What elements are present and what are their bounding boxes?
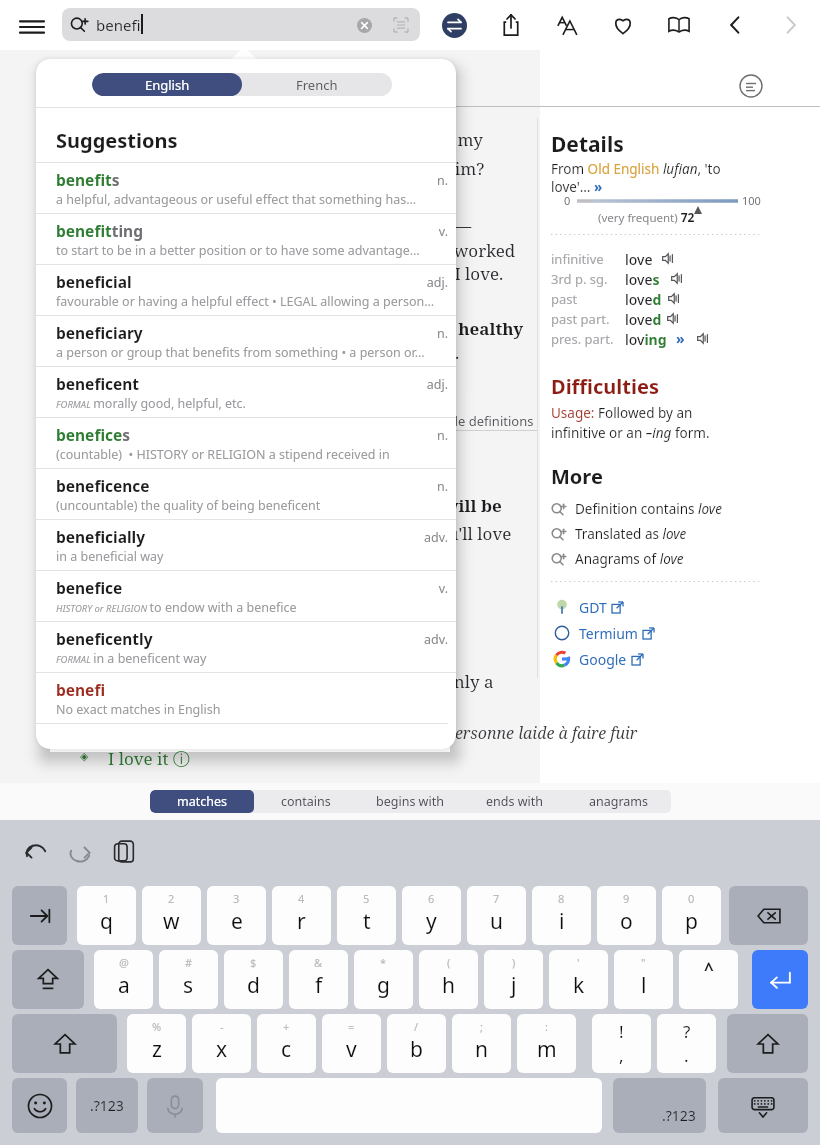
staticText: t bbox=[363, 907, 371, 936]
button[interactable]: Anagrams of love bbox=[551, 548, 766, 570]
button[interactable]: benefice bbox=[36, 571, 456, 621]
button[interactable]: Pronounce bbox=[662, 252, 675, 265]
button[interactable]: ^ bbox=[679, 950, 738, 1009]
button[interactable]: 2 bbox=[142, 886, 201, 945]
staticText: Usage: Followed by an infinitive or an –… bbox=[551, 404, 731, 442]
button[interactable]: ' bbox=[549, 950, 608, 1009]
button[interactable]: Translated as love bbox=[551, 523, 766, 545]
button[interactable]: ( bbox=[419, 950, 478, 1009]
staticText: ◈ bbox=[80, 750, 89, 763]
button[interactable]: Pronounce bbox=[667, 312, 680, 325]
button[interactable]: .?123 bbox=[76, 1078, 138, 1133]
button[interactable]: Paste bbox=[112, 838, 138, 864]
button[interactable]: * bbox=[354, 950, 413, 1009]
staticText: i bbox=[559, 907, 565, 936]
button[interactable]: ! bbox=[592, 1014, 651, 1073]
button[interactable]: Redo bbox=[66, 838, 94, 866]
button[interactable]: benefi bbox=[62, 8, 420, 41]
button[interactable]: Pronounce bbox=[671, 272, 684, 285]
button[interactable]: begins with bbox=[358, 790, 462, 813]
button[interactable]: contains bbox=[254, 790, 358, 813]
button[interactable]: matches bbox=[150, 790, 254, 813]
button[interactable]: Return bbox=[752, 950, 808, 1009]
button[interactable]: benefits bbox=[36, 163, 456, 213]
button[interactable]: ends with bbox=[462, 790, 566, 813]
button[interactable]: Hide keyboard bbox=[718, 1078, 808, 1133]
button[interactable]: .?123 bbox=[613, 1078, 706, 1133]
button[interactable]: GDT bbox=[551, 595, 721, 619]
button[interactable]: ? bbox=[657, 1014, 716, 1073]
button[interactable]: Scan text bbox=[392, 16, 410, 34]
button[interactable]: benefices bbox=[36, 418, 456, 468]
button[interactable]: Pronounce bbox=[697, 332, 710, 345]
button[interactable]: Undo bbox=[22, 838, 50, 866]
staticText: (uncountable) the quality of being benef… bbox=[56, 497, 446, 514]
button[interactable]: Definition contains love bbox=[551, 498, 766, 520]
staticText: past bbox=[551, 290, 578, 308]
button[interactable]: Menu bbox=[12, 7, 52, 47]
staticText: * bbox=[380, 955, 387, 970]
staticText: French bbox=[296, 76, 338, 94]
button[interactable]: Google bbox=[551, 647, 721, 671]
button[interactable]: Forward bbox=[771, 5, 811, 45]
button[interactable]: Shift bbox=[727, 1014, 808, 1073]
button[interactable]: 6 bbox=[402, 886, 461, 945]
button[interactable]: 7 bbox=[467, 886, 526, 945]
button[interactable]: @ bbox=[94, 950, 153, 1009]
button[interactable]: - bbox=[192, 1014, 251, 1073]
button[interactable]: $ bbox=[224, 950, 283, 1009]
button[interactable]: Clear bbox=[357, 18, 372, 33]
button[interactable]: + bbox=[257, 1014, 316, 1073]
button[interactable]: Text size bbox=[547, 5, 587, 45]
button[interactable]: Back bbox=[715, 5, 755, 45]
button[interactable]: 9 bbox=[597, 886, 656, 945]
button[interactable]: beneficiary bbox=[36, 316, 456, 366]
staticText: pres. part. bbox=[551, 330, 614, 348]
button[interactable]: Pronounce bbox=[668, 292, 681, 305]
button[interactable]: : bbox=[517, 1014, 576, 1073]
staticText: Difficulties bbox=[551, 373, 659, 400]
button[interactable]: 5 bbox=[337, 886, 396, 945]
staticText: n. bbox=[408, 172, 448, 189]
button[interactable]: beneficial bbox=[36, 265, 456, 315]
button[interactable]: beneficially bbox=[36, 520, 456, 570]
button[interactable]: Caps lock bbox=[12, 950, 84, 1009]
button[interactable]: Share bbox=[491, 5, 531, 45]
button[interactable]: / bbox=[387, 1014, 446, 1073]
button[interactable]: = bbox=[322, 1014, 381, 1073]
staticText: a helpful, advantageous or useful effect… bbox=[56, 191, 446, 208]
button[interactable]: Shift bbox=[12, 1014, 117, 1073]
button[interactable]: beneficence bbox=[36, 469, 456, 519]
button[interactable]: " bbox=[614, 950, 673, 1009]
button[interactable]: Termium bbox=[551, 621, 721, 645]
button[interactable]: Emoji bbox=[12, 1078, 67, 1133]
button[interactable]: 3 bbox=[207, 886, 266, 945]
button[interactable]: # bbox=[159, 950, 218, 1009]
button[interactable]: French bbox=[242, 73, 392, 96]
button[interactable]: beneficent bbox=[36, 367, 456, 417]
button[interactable]: 0 bbox=[662, 886, 721, 945]
button[interactable]: Tab bbox=[12, 886, 67, 945]
button[interactable]: ; bbox=[452, 1014, 511, 1073]
button[interactable]: Display options bbox=[440, 62, 480, 102]
button[interactable]: ) bbox=[484, 950, 543, 1009]
button[interactable]: beneficently bbox=[36, 622, 456, 672]
button[interactable]: Voice input bbox=[147, 1078, 203, 1133]
staticText: Translated as love bbox=[575, 525, 687, 543]
button[interactable]: Bookmarks bbox=[659, 5, 699, 45]
button[interactable]: benefi bbox=[36, 673, 456, 723]
button[interactable]: % bbox=[127, 1014, 186, 1073]
button[interactable]: 4 bbox=[272, 886, 331, 945]
button[interactable]: Backspace bbox=[729, 886, 808, 945]
button[interactable]: Favourite bbox=[603, 5, 643, 45]
button[interactable]: 1 bbox=[77, 886, 136, 945]
button[interactable]: & bbox=[289, 950, 348, 1009]
button[interactable]: Translate bbox=[434, 5, 474, 45]
button[interactable]: benefitting bbox=[36, 214, 456, 264]
staticText: - bbox=[220, 1019, 224, 1034]
button[interactable]: anagrams bbox=[566, 790, 671, 813]
button[interactable]: English bbox=[92, 73, 242, 96]
button[interactable]: 8 bbox=[532, 886, 591, 945]
staticText: , bbox=[619, 1044, 624, 1067]
